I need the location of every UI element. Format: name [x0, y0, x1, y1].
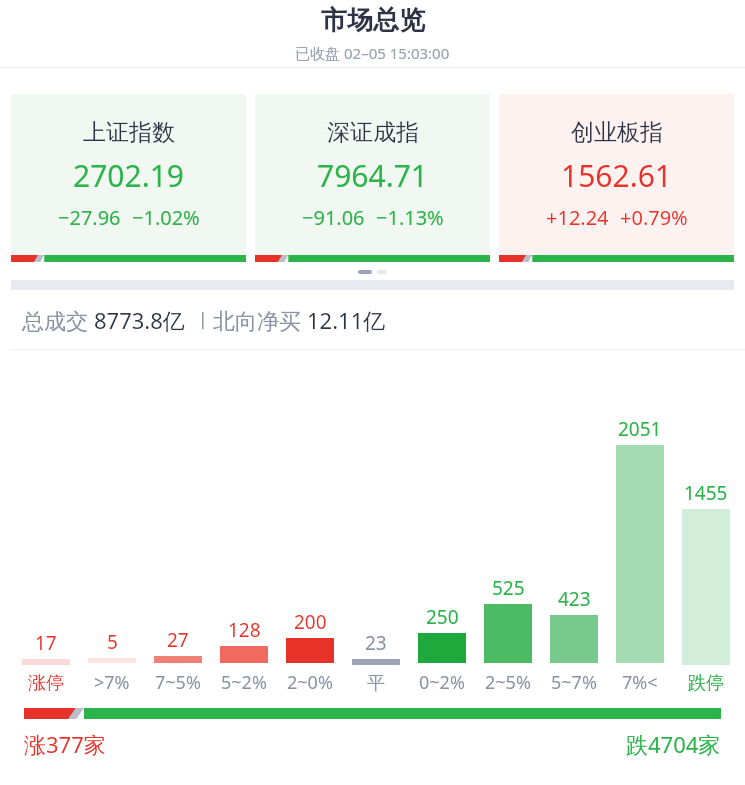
staticText: 128 — [228, 617, 261, 643]
staticText: 北向净买 — [213, 305, 307, 335]
staticText: 2~5% — [485, 670, 531, 695]
button[interactable]: 128 — [211, 617, 277, 695]
staticText: 423 — [558, 586, 591, 612]
staticText: 27 — [167, 627, 189, 653]
staticText: 跌停 — [688, 672, 724, 695]
staticText: 200 — [294, 609, 327, 635]
button[interactable]: 525 — [475, 575, 541, 695]
staticText: 总成交 — [22, 305, 94, 335]
staticText: 5 — [107, 629, 118, 655]
staticText: 涨377家 — [24, 729, 106, 759]
staticText: +0.79% — [620, 204, 688, 231]
staticText: 2051 — [618, 416, 662, 442]
button[interactable]: 2051 — [607, 416, 673, 695]
staticText: 12.11亿 — [307, 305, 386, 335]
staticText: 5~2% — [221, 670, 267, 695]
staticText: −1.02% — [132, 204, 200, 231]
staticText: 市场总览 — [321, 4, 425, 37]
staticText: 平 — [367, 672, 385, 695]
button[interactable]: 423 — [541, 586, 607, 695]
button[interactable] — [24, 708, 721, 719]
button[interactable]: 17 — [12, 630, 79, 695]
staticText: 丨 — [185, 308, 213, 333]
staticText: 5~7% — [551, 670, 597, 695]
staticText: >7% — [94, 670, 130, 695]
staticText: 8773.8亿 — [94, 305, 185, 335]
staticText: 250 — [426, 604, 459, 630]
button[interactable]: 创业板指 — [499, 94, 734, 262]
button[interactable]: 250 — [409, 604, 475, 695]
staticText: 02–05 15:03:00 — [344, 43, 450, 63]
staticText: 0~2% — [419, 670, 465, 695]
staticText: −1.13% — [376, 204, 444, 231]
staticText: 涨停 — [28, 672, 64, 695]
staticText: −27.96 — [58, 204, 121, 231]
button[interactable]: 上证指数 — [11, 94, 246, 262]
button[interactable]: 总成交 — [0, 290, 745, 350]
staticText: 2702.19 — [73, 155, 184, 196]
button[interactable]: 1455 — [673, 480, 739, 695]
staticText: 1455 — [684, 480, 728, 506]
staticText: 2~0% — [287, 670, 333, 695]
staticText: 7~5% — [155, 670, 201, 695]
staticText: 17 — [35, 630, 57, 656]
staticText: 创业板指 — [571, 118, 663, 147]
staticText: 525 — [492, 575, 525, 601]
staticText: 上证指数 — [83, 118, 175, 147]
button[interactable]: 200 — [277, 609, 343, 695]
staticText: 跌4704家 — [626, 729, 721, 759]
staticText: 深证成指 — [327, 118, 419, 147]
staticText: +12.24 — [546, 204, 609, 231]
staticText: 1562.61 — [561, 155, 672, 196]
button[interactable]: 27 — [145, 627, 211, 695]
staticText: 23 — [365, 630, 387, 656]
button[interactable]: 5 — [79, 629, 145, 695]
button[interactable]: 深证成指 — [255, 94, 490, 262]
button[interactable]: 23 — [343, 630, 409, 695]
staticText: −91.06 — [302, 204, 365, 231]
staticText: 已收盘 — [295, 43, 344, 63]
staticText: 7964.71 — [317, 155, 428, 196]
staticText: 7%< — [622, 670, 658, 695]
